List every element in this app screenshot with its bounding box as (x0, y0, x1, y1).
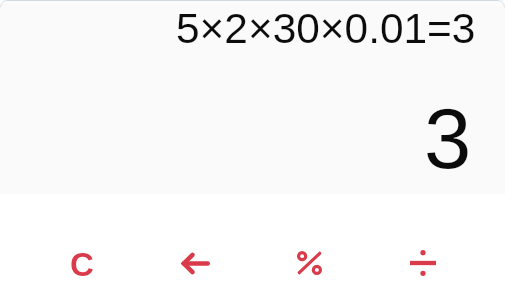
button[interactable]: Backspace (138, 194, 252, 295)
button[interactable]: Clear (25, 194, 138, 295)
staticText: 3 (424, 91, 472, 186)
staticText: C (70, 246, 94, 276)
staticText: 5×2×30×0.01=3 (176, 5, 476, 52)
button[interactable]: Divide (366, 194, 480, 295)
button[interactable]: Percent (252, 194, 366, 295)
